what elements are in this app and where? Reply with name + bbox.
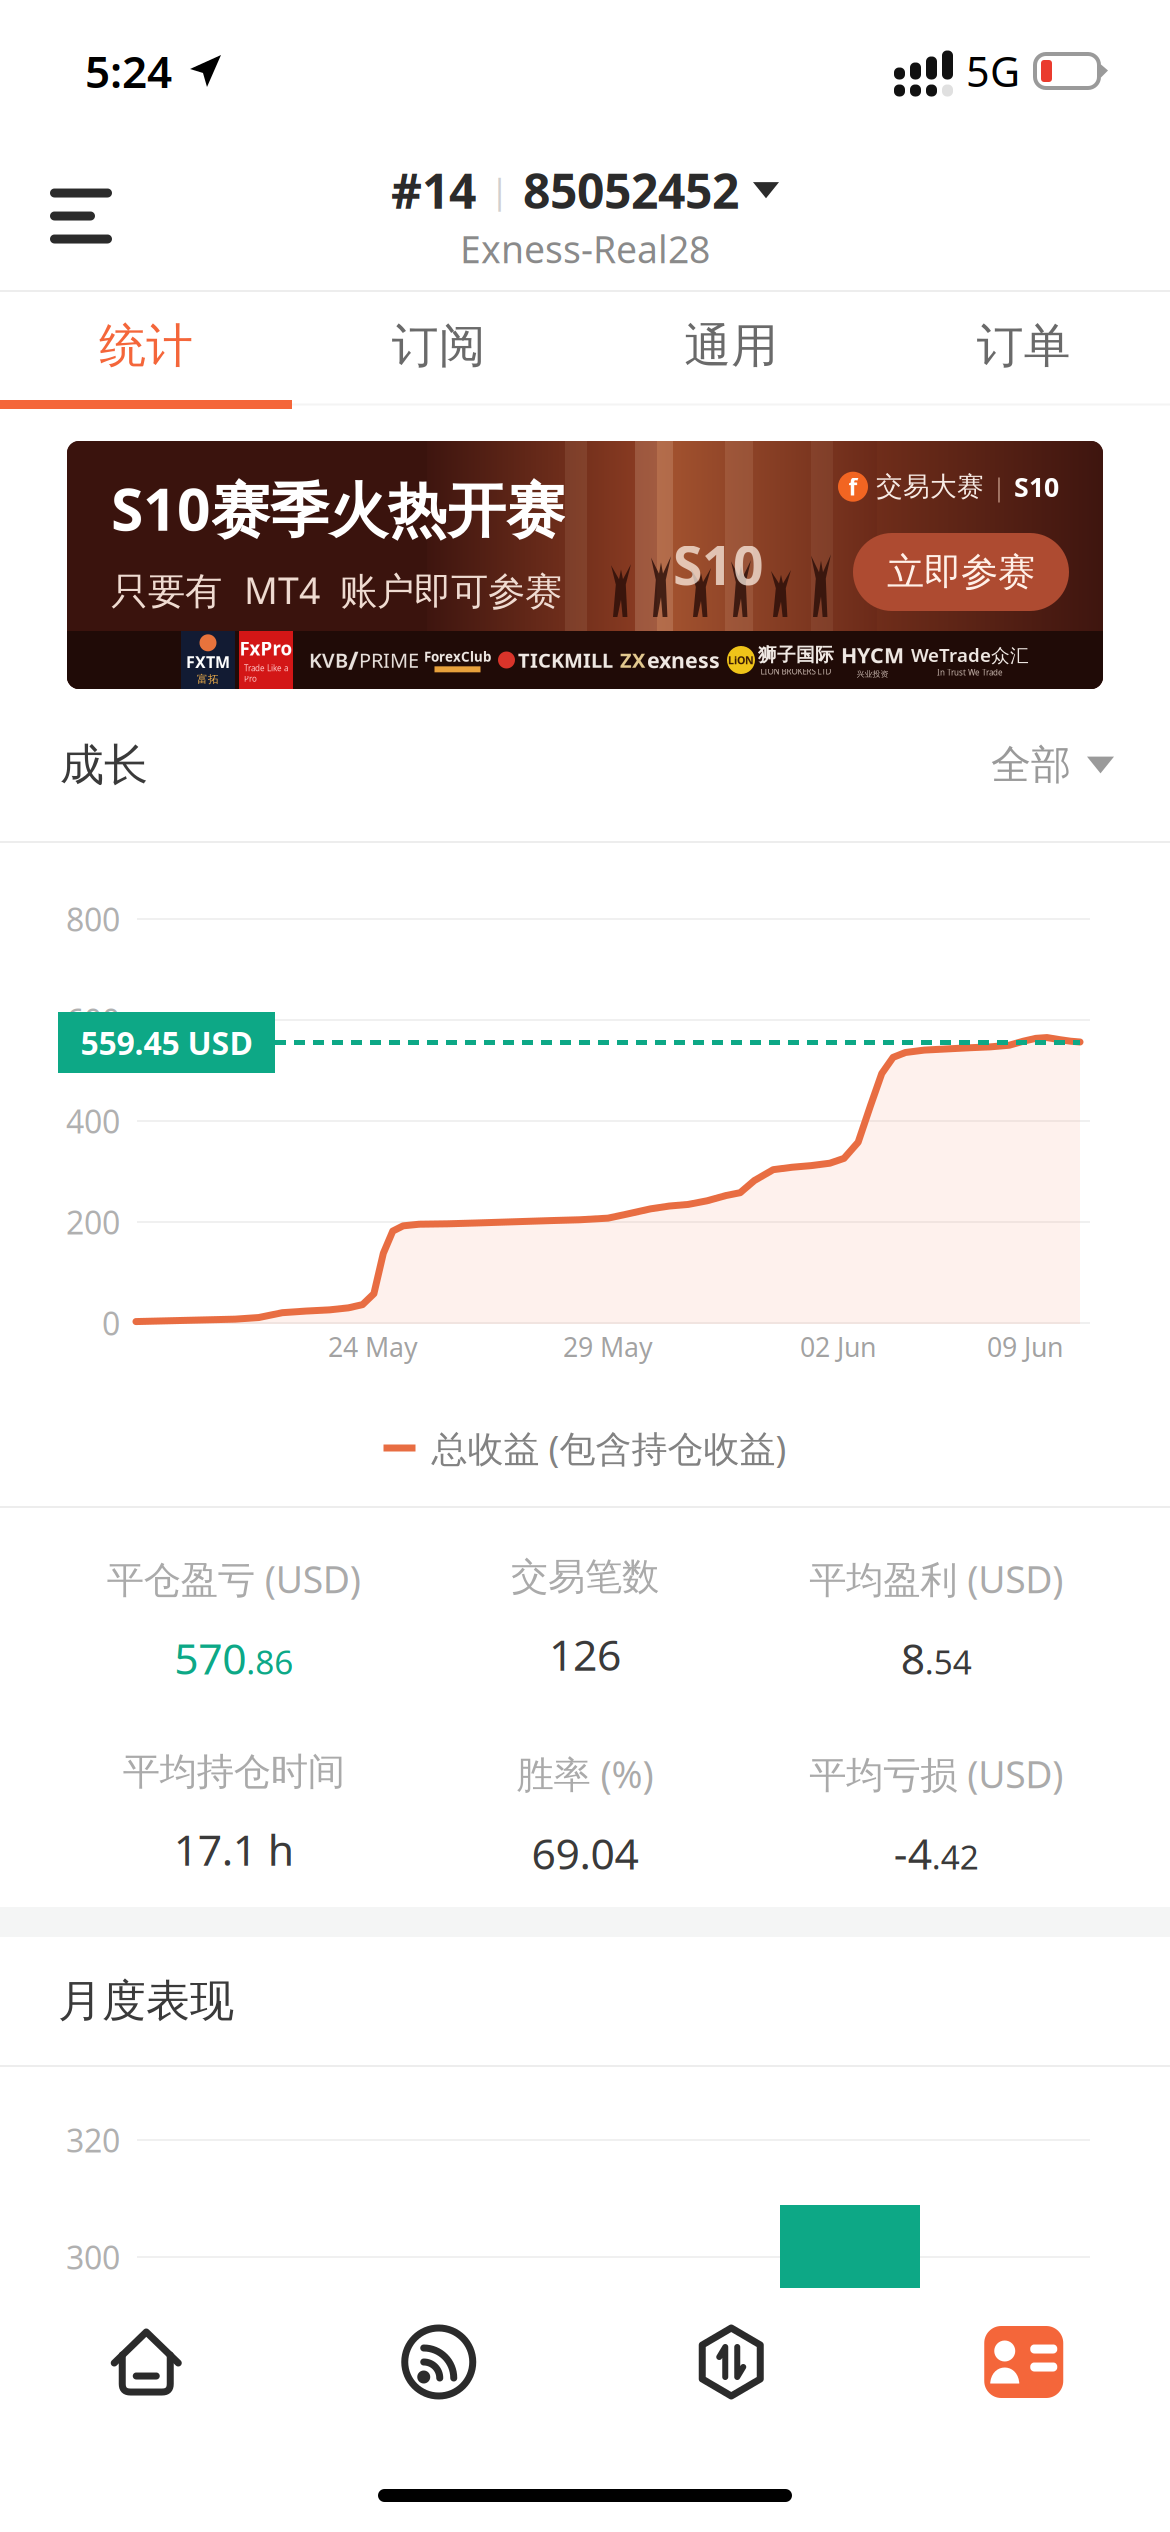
staticText: exness xyxy=(647,646,720,674)
button[interactable]: Menu xyxy=(24,167,138,265)
button[interactable]: Signals xyxy=(292,2288,585,2436)
staticText: 126 xyxy=(549,1626,621,1683)
staticText: 5G xyxy=(966,44,1020,98)
staticText: Trade Like a Pro xyxy=(244,663,288,684)
staticText: 02 Jun xyxy=(800,1329,876,1364)
button[interactable]: Home xyxy=(0,2288,292,2436)
button[interactable]: Account xyxy=(877,2288,1170,2436)
staticText: 交易笔数 xyxy=(511,1554,659,1600)
staticText: 570 xyxy=(174,1630,246,1686)
staticText: 通用 xyxy=(684,317,778,375)
staticText: 统计 xyxy=(99,317,193,375)
staticText: 24 May xyxy=(328,1329,418,1364)
button[interactable]: S10 xyxy=(67,441,1103,689)
staticText: 订单 xyxy=(977,317,1071,375)
staticText: 800 xyxy=(66,898,120,940)
button[interactable]: Trade xyxy=(585,2288,877,2436)
staticText: FxPro xyxy=(239,636,292,661)
staticText: 总收益 (包含持仓收益) xyxy=(431,1424,786,1472)
staticText: -4 xyxy=(894,1825,932,1881)
staticText: 平均盈利 (USD) xyxy=(809,1554,1063,1604)
staticText: 只要有 MT4 账户即可参赛 xyxy=(111,565,562,615)
staticText: S10 xyxy=(1014,469,1059,504)
staticText: .42 xyxy=(932,1834,979,1879)
staticText: In Trust We Trade xyxy=(937,667,1003,678)
staticText: 全部 xyxy=(991,740,1071,789)
staticText: 400 xyxy=(66,1100,120,1142)
staticText: PRIME xyxy=(359,647,419,673)
staticText: 立即参赛 xyxy=(887,549,1035,595)
staticText: 320 xyxy=(66,2119,120,2161)
staticText: 胜率 (%) xyxy=(516,1749,653,1799)
staticText: S10 xyxy=(673,529,764,600)
staticText: Exness-Real28 xyxy=(460,224,710,274)
staticText: TICKMILL xyxy=(518,647,613,673)
staticText: ZX xyxy=(620,647,645,673)
staticText: 平仓盈亏 (USD) xyxy=(107,1554,361,1604)
button[interactable]: 全部 xyxy=(991,740,1114,789)
staticText: HYCM xyxy=(841,641,904,669)
staticText: 8 xyxy=(901,1630,925,1686)
button[interactable]: 通用 xyxy=(585,292,877,400)
staticText: 600 xyxy=(66,999,120,1041)
staticText: 月度表现 xyxy=(58,1974,234,2028)
staticText: LiON xyxy=(728,653,754,667)
staticText: 交易大赛 xyxy=(876,470,984,503)
staticText: .54 xyxy=(925,1639,972,1684)
button[interactable]: 统计 xyxy=(0,292,292,400)
staticText: f xyxy=(848,472,857,502)
staticText: ForexClub xyxy=(424,648,491,665)
staticText: 兴业投资 xyxy=(856,669,888,679)
staticText: / xyxy=(348,643,359,677)
staticText: FXTM xyxy=(186,651,230,672)
staticText: 狮子国际 xyxy=(758,643,834,666)
staticText: WeTrade众汇 xyxy=(911,642,1029,667)
staticText: S10赛季火热开赛 xyxy=(111,469,565,547)
staticText: LION BROKERS LTD xyxy=(760,666,831,677)
staticText: KVB xyxy=(309,647,348,673)
button[interactable]: 订单 xyxy=(877,292,1170,400)
button[interactable]: 订阅 xyxy=(292,292,585,400)
staticText: 200 xyxy=(66,1201,120,1243)
staticText: 成长 xyxy=(60,738,148,792)
staticText: 29 May xyxy=(563,1329,653,1364)
staticText: .86 xyxy=(246,1639,293,1684)
staticText: #14 xyxy=(391,158,476,222)
staticText: 85052452 xyxy=(523,158,739,222)
staticText: 300 xyxy=(66,2236,120,2278)
staticText: 5:24 xyxy=(85,42,172,100)
staticText: 09 Jun xyxy=(987,1329,1063,1364)
staticText: | xyxy=(992,470,1006,503)
staticText: 富拓 xyxy=(197,673,219,686)
staticText: 平均持仓时间 xyxy=(123,1749,345,1795)
staticText: 0 xyxy=(102,1302,120,1344)
staticText: 订阅 xyxy=(392,317,486,375)
staticText: | xyxy=(490,167,509,213)
button[interactable]: #14 xyxy=(391,158,779,222)
staticText: 559.45 USD xyxy=(80,1021,252,1064)
staticText: 17.1 h xyxy=(174,1821,294,1878)
staticText: 69.04 xyxy=(531,1825,638,1881)
staticText: 平均亏损 (USD) xyxy=(809,1749,1063,1799)
